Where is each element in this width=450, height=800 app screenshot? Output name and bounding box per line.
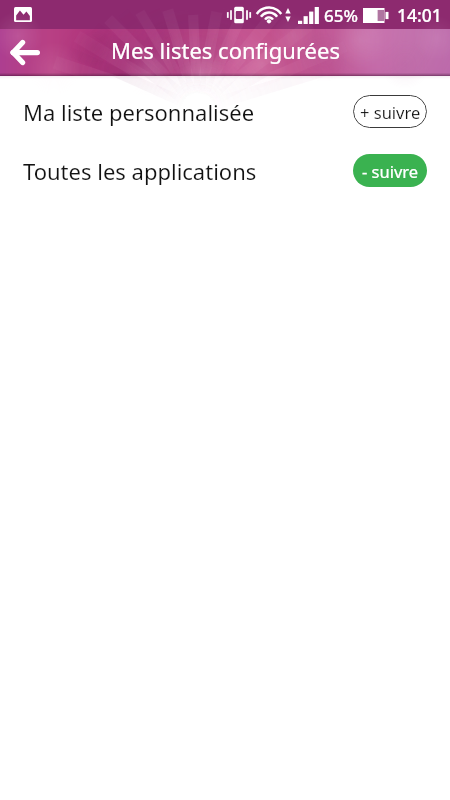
button[interactable]: - suivre (353, 154, 427, 187)
staticText: - suivre (362, 160, 419, 182)
staticText: Mes listes configurées (111, 35, 340, 65)
staticText: Toutes les applications (23, 156, 353, 186)
button[interactable]: Back (3, 30, 47, 74)
staticText: Ma liste personnalisée (23, 97, 353, 127)
staticText: + suivre (360, 101, 421, 123)
staticText: 65% (324, 4, 358, 27)
button[interactable]: + suivre (353, 95, 427, 128)
staticText: 14:01 (397, 3, 442, 27)
